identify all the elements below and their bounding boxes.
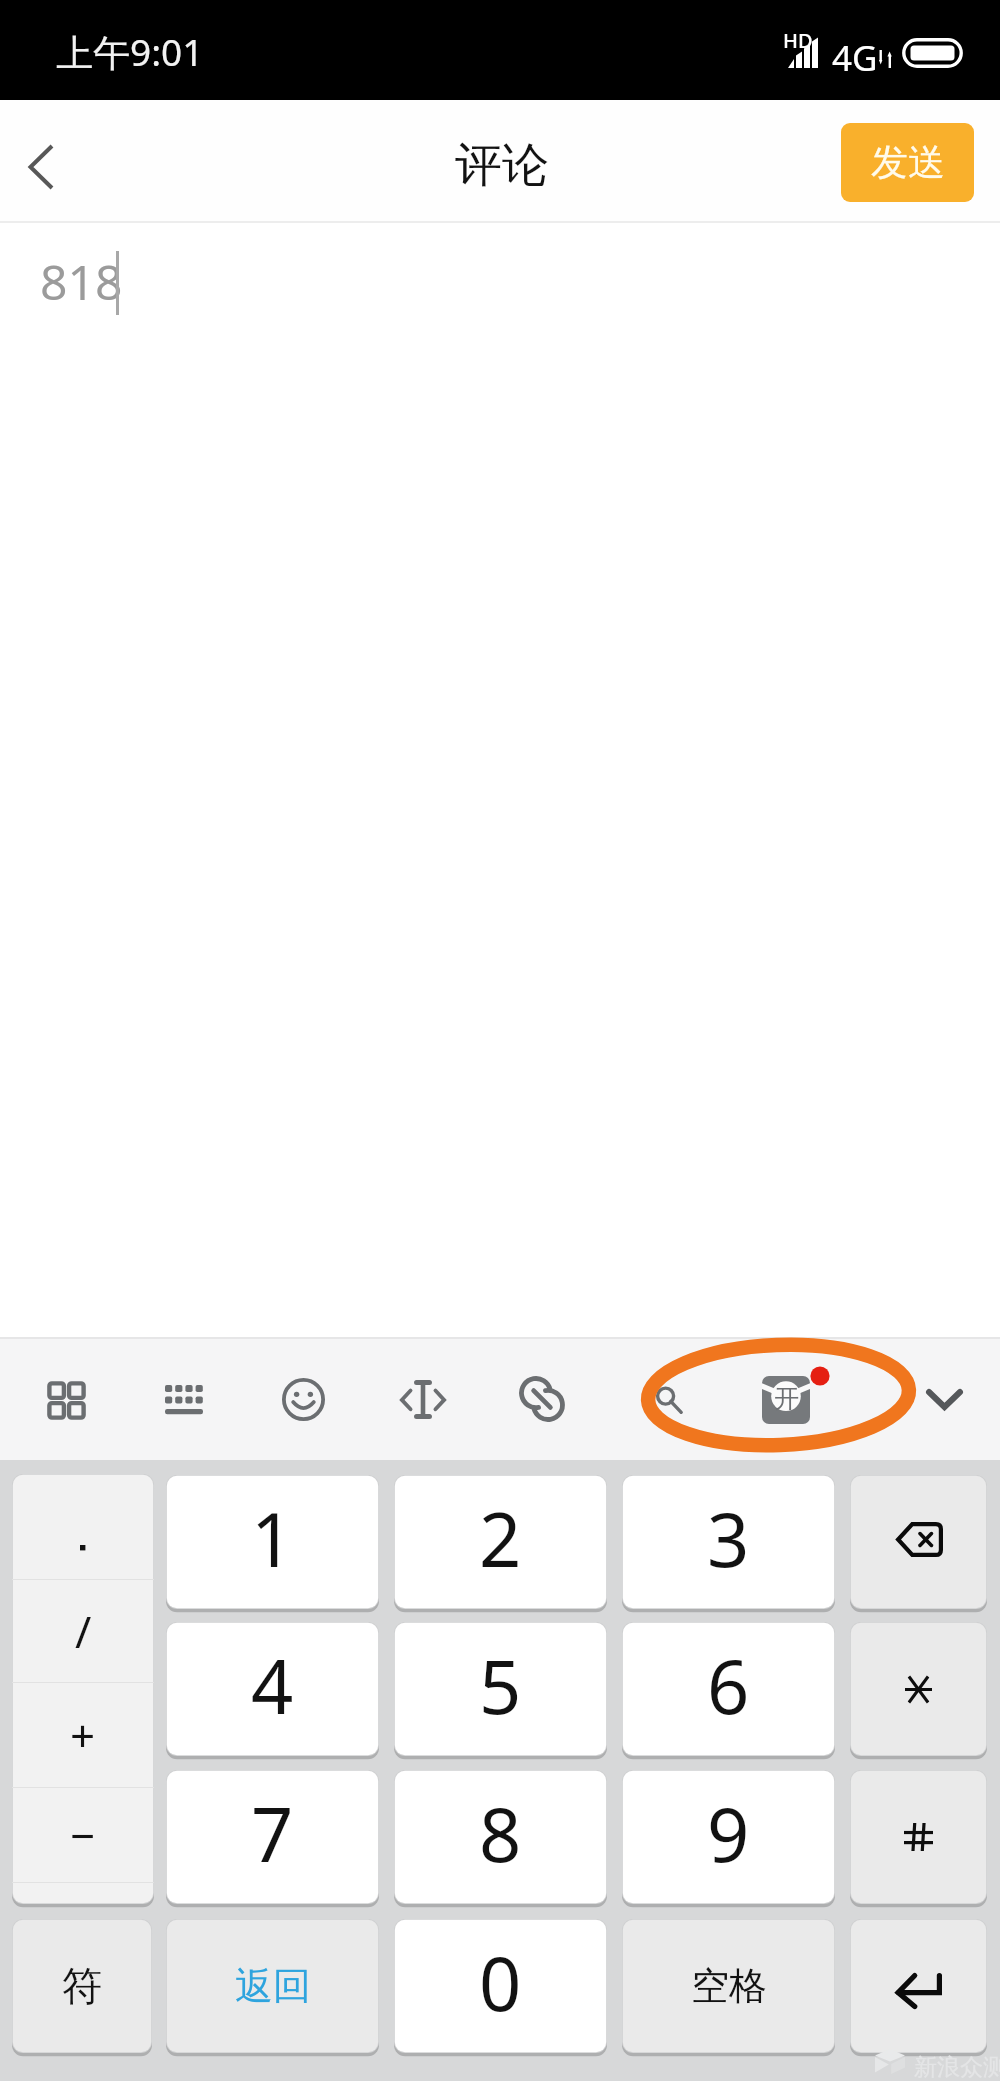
button[interactable]: 7: [166, 1770, 379, 1904]
staticText: 空格: [691, 1962, 767, 2010]
staticText: 开: [774, 1383, 799, 1414]
button[interactable]: /: [12, 1474, 154, 1904]
staticText: 发送: [871, 139, 945, 186]
staticText: 符: [62, 1961, 102, 2011]
staticText: 8: [479, 1783, 522, 1884]
staticText: 818: [40, 249, 123, 314]
staticText: 评论: [455, 136, 549, 195]
staticText: HD: [783, 27, 813, 54]
button[interactable]: 返回: [166, 1919, 379, 2053]
button[interactable]: Emoji: [268, 1364, 338, 1434]
button[interactable]: Clipboard: [507, 1364, 577, 1434]
staticText: 9: [707, 1783, 750, 1884]
button[interactable]: [850, 1475, 987, 1609]
staticText: 0: [479, 1932, 522, 2033]
button[interactable]: Keyboard layouts: [30, 1364, 100, 1434]
button[interactable]: −: [12, 1788, 154, 1882]
staticText: 1: [251, 1488, 294, 1589]
staticText: 返回: [235, 1962, 311, 2010]
staticText: 3: [707, 1488, 750, 1589]
button[interactable]: [12, 1474, 154, 1579]
staticText: 7: [251, 1783, 294, 1884]
button[interactable]: /: [12, 1580, 154, 1682]
button[interactable]: 4: [166, 1622, 379, 1756]
button[interactable]: 8: [394, 1770, 607, 1904]
button[interactable]: 发送: [841, 123, 974, 202]
button[interactable]: +: [12, 1683, 154, 1787]
button[interactable]: 5: [394, 1622, 607, 1756]
staticText: 4G: [832, 34, 878, 82]
staticText: 上午9:01: [56, 26, 204, 77]
button[interactable]: 9: [622, 1770, 835, 1904]
button[interactable]: Search: [630, 1351, 702, 1447]
staticText: 2: [479, 1488, 522, 1589]
button[interactable]: 6: [622, 1622, 835, 1756]
button[interactable]: 3: [622, 1475, 835, 1609]
staticText: +: [70, 1705, 96, 1765]
staticText: /: [75, 1601, 92, 1661]
staticText: 5: [479, 1635, 522, 1736]
staticText: 新浪众测: [914, 2053, 1000, 2081]
button[interactable]: Hide keyboard: [905, 1364, 975, 1434]
button[interactable]: 符: [12, 1919, 152, 2053]
button[interactable]: Back: [0, 100, 86, 221]
button[interactable]: Stickers: [752, 1359, 836, 1439]
button[interactable]: 0: [394, 1919, 607, 2053]
button[interactable]: Keyboard: [149, 1364, 219, 1434]
button[interactable]: Move cursor: [388, 1364, 458, 1434]
staticText: 4: [251, 1635, 294, 1736]
button[interactable]: 1: [166, 1475, 379, 1609]
button[interactable]: 空格: [622, 1919, 835, 2053]
button[interactable]: 2: [394, 1475, 607, 1609]
button[interactable]: [850, 1770, 987, 1904]
button[interactable]: [850, 1919, 987, 2053]
staticText: 6: [707, 1635, 750, 1736]
button[interactable]: [850, 1622, 987, 1756]
staticText: −: [70, 1805, 96, 1865]
